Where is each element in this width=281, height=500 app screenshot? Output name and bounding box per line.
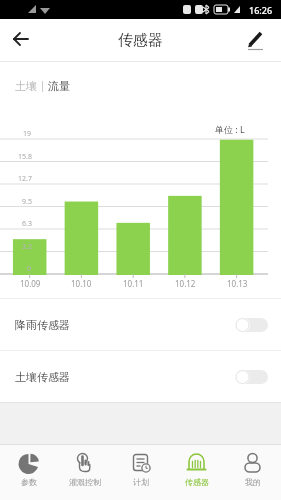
staticText: 6.3: [22, 219, 32, 229]
button[interactable]: 流量: [48, 79, 70, 93]
staticText: 我的: [245, 477, 261, 487]
staticText: 10.12: [175, 278, 196, 289]
staticText: 12.7: [18, 174, 32, 184]
button[interactable]: [239, 19, 281, 61]
staticText: 19: [23, 129, 32, 139]
staticText: 15.8: [18, 152, 32, 162]
button[interactable]: 参数: [0, 445, 57, 500]
staticText: 传感器: [118, 31, 163, 50]
staticText: 参数: [21, 477, 37, 487]
button[interactable]: 降雨传感器: [0, 299, 281, 350]
staticText: 10.09: [20, 278, 41, 289]
staticText: 降雨传感器: [15, 318, 70, 332]
staticText: 土壤: [15, 79, 37, 93]
staticText: 10.11: [123, 278, 144, 289]
button[interactable]: [235, 370, 268, 384]
staticText: 单位 : L: [215, 123, 245, 135]
button[interactable]: [235, 318, 268, 332]
button[interactable]: 灌溉控制: [57, 445, 113, 500]
staticText: 传感器: [185, 477, 209, 487]
staticText: 10.13: [227, 278, 248, 289]
staticText: 16:26: [249, 4, 273, 16]
staticText: 0: [27, 264, 32, 274]
staticText: 流量: [48, 79, 70, 93]
button[interactable]: 我的: [225, 445, 281, 500]
button[interactable]: 土壤传感器: [0, 351, 281, 402]
button[interactable]: 计划: [113, 445, 169, 500]
staticText: 土壤传感器: [15, 370, 70, 384]
button[interactable]: [0, 19, 42, 61]
staticText: 9.5: [22, 197, 32, 207]
staticText: 灌溉控制: [69, 477, 101, 487]
staticText: 3.2: [22, 242, 32, 252]
button[interactable]: 传感器: [169, 445, 225, 500]
button[interactable]: 土壤: [15, 79, 37, 93]
staticText: 10.10: [71, 278, 92, 289]
staticText: 计划: [133, 477, 149, 487]
